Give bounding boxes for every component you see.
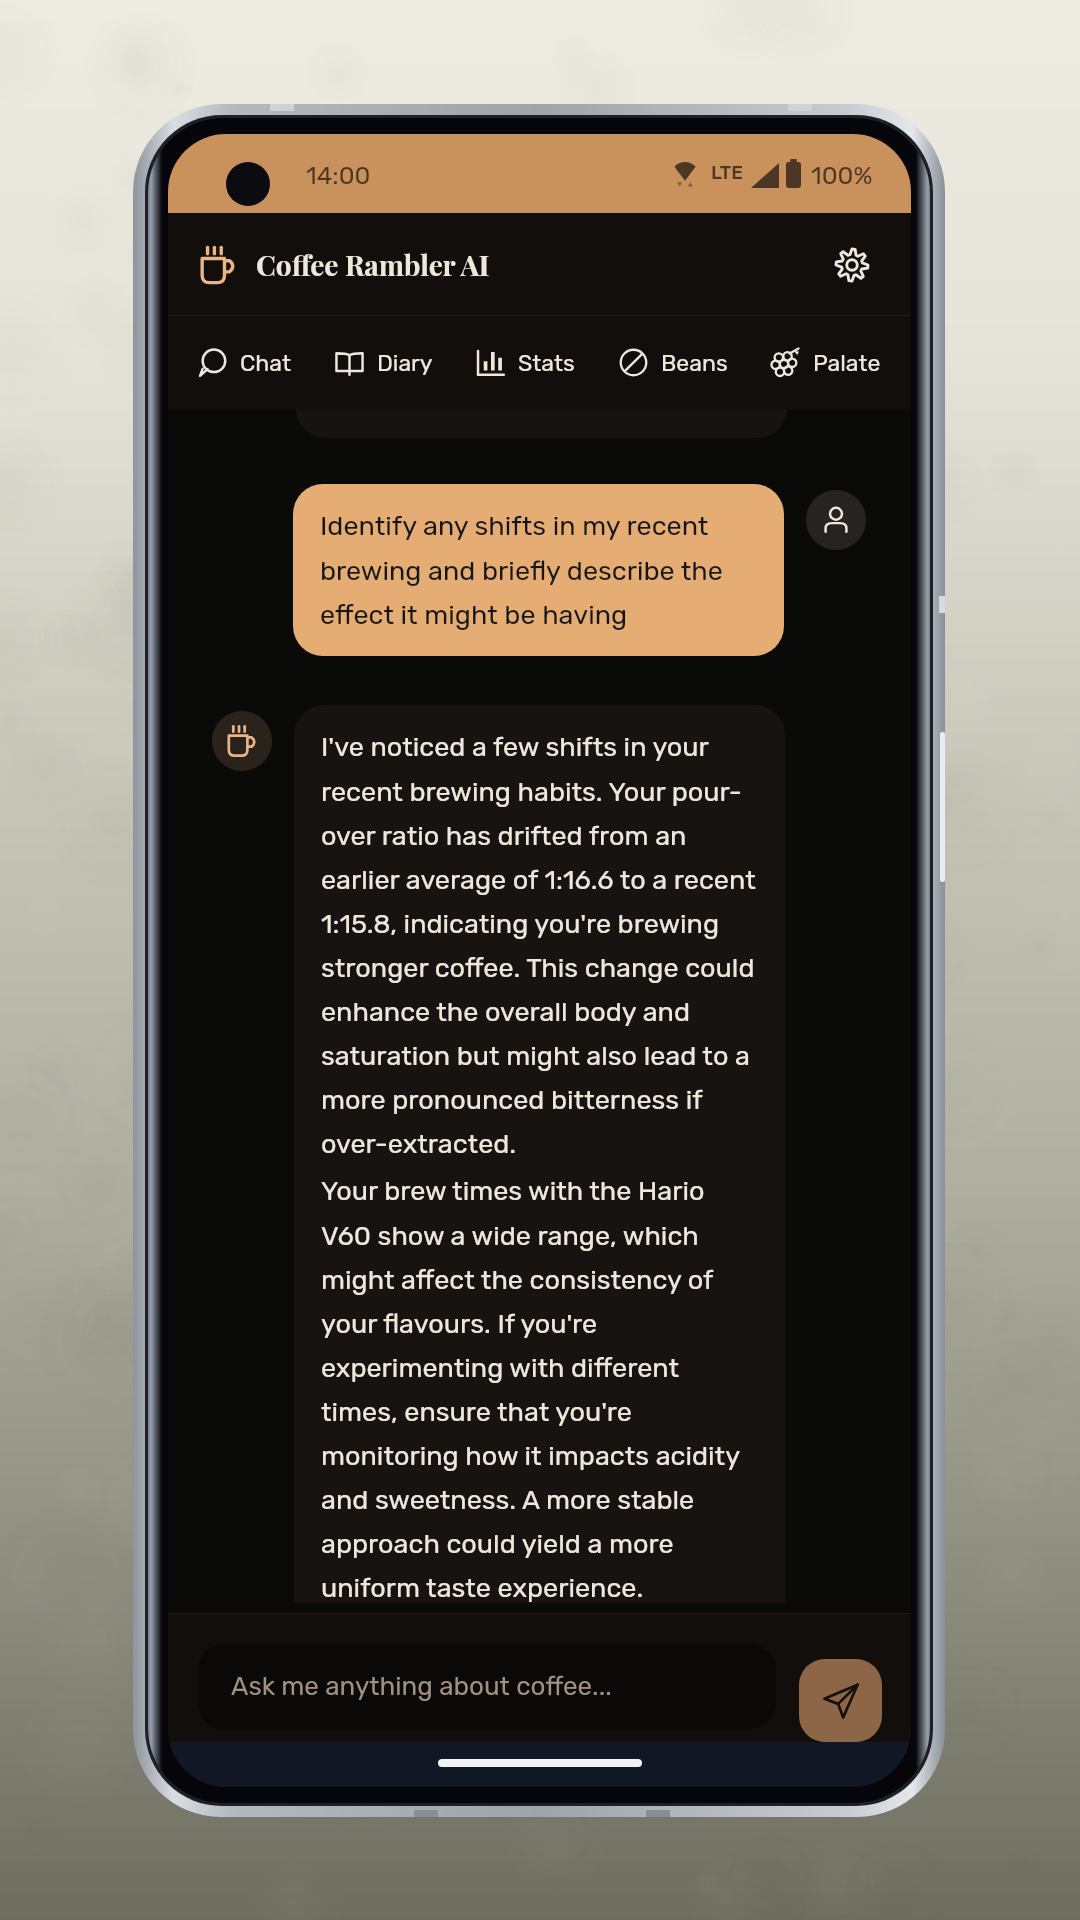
staticText: Stats xyxy=(518,349,575,376)
staticText: I've noticed a few shifts in your recent… xyxy=(321,731,758,1159)
button[interactable]: Your profile xyxy=(806,490,866,550)
staticText: Diary xyxy=(377,349,433,376)
staticText: Ask me anything about coffee... xyxy=(231,1671,612,1702)
button[interactable]: Coffee Rambler assistant xyxy=(212,711,272,771)
staticText: LTE xyxy=(711,161,744,184)
button[interactable]: Stats xyxy=(472,334,579,391)
staticText: 14:00 xyxy=(306,161,371,191)
button[interactable]: I've noticed a few shifts in your recent… xyxy=(294,705,785,1603)
button[interactable]: Send message xyxy=(799,1659,882,1742)
button[interactable]: Diary xyxy=(331,334,437,391)
staticText: Chat xyxy=(240,349,291,376)
button[interactable]: Settings xyxy=(821,234,883,296)
button[interactable]: Ask me anything about coffee... xyxy=(198,1644,776,1729)
button[interactable]: Beans xyxy=(615,334,732,391)
staticText: Beans xyxy=(661,349,728,376)
staticText: Identify any shifts in my recent brewing… xyxy=(320,510,757,630)
staticText: Palate xyxy=(813,349,881,376)
staticText: 100% xyxy=(811,161,873,191)
button[interactable]: Chat xyxy=(194,334,295,391)
button[interactable]: Identify any shifts in my recent brewing… xyxy=(293,484,784,656)
button[interactable]: Palate xyxy=(767,334,885,391)
staticText: Your brew times with the Hario V60 show … xyxy=(321,1175,758,1603)
staticText: Coffee Rambler AI xyxy=(256,246,490,283)
